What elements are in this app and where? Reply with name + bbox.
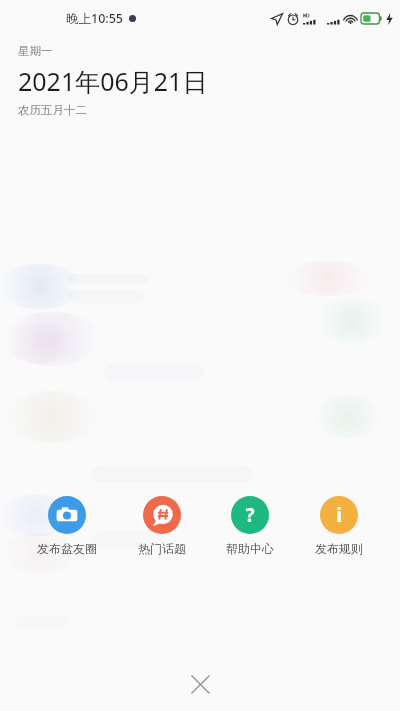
button[interactable]: 关闭	[180, 664, 220, 704]
staticText: ?	[245, 502, 255, 528]
staticText: 星期一	[18, 44, 53, 58]
staticText: 帮助中心	[226, 541, 274, 556]
button[interactable]: 发布盆友圈	[33, 496, 101, 556]
staticText: i	[336, 502, 342, 528]
staticText: 发布盆友圈	[37, 541, 97, 556]
staticText: 2021年06月21日	[18, 64, 208, 98]
staticText: 晚上10:55	[66, 10, 124, 27]
button[interactable]: 热门话题	[134, 496, 190, 556]
staticText: 发布规则	[315, 541, 363, 556]
staticText: 农历五月十二	[18, 103, 87, 117]
button[interactable]: ?	[222, 496, 278, 556]
staticText: 热门话题	[138, 541, 186, 556]
button[interactable]: i	[311, 496, 367, 556]
